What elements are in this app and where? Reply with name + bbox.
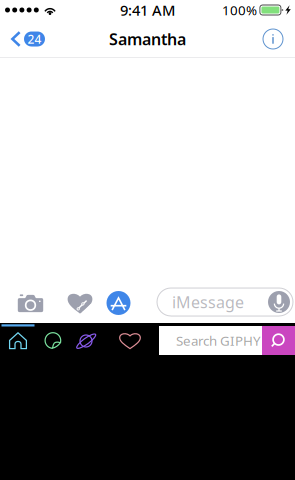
staticText: iMessage — [172, 291, 244, 313]
button[interactable]: Explore — [70, 323, 103, 357]
staticText: Samantha — [109, 28, 186, 50]
button[interactable]: Home — [0, 323, 36, 357]
button[interactable]: iMessage apps — [99, 286, 138, 320]
button[interactable]: Favorites — [103, 323, 157, 357]
button[interactable]: Camera — [0, 286, 61, 320]
button[interactable]: Search — [262, 326, 295, 355]
button[interactable]: Digital Touch — [61, 286, 99, 320]
staticText: 24 — [27, 31, 41, 47]
button[interactable]: Back, 24 unread messages — [0, 20, 53, 58]
button[interactable]: Details — [251, 20, 295, 58]
staticText: 100% — [222, 1, 257, 19]
staticText: 9:41 AM — [120, 0, 175, 20]
button[interactable]: Search GIPHY — [159, 326, 262, 355]
button[interactable]: iMessage text field — [157, 288, 293, 316]
staticText: Search GIPHY — [176, 332, 261, 349]
button[interactable]: Stickers — [36, 323, 70, 357]
